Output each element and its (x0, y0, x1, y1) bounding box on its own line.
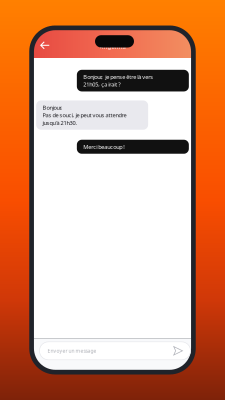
staticText: Bonjour, (43, 104, 63, 111)
staticText: Angelina (99, 43, 125, 51)
button[interactable]: Back (37, 39, 53, 52)
staticText: Merci beaucoup ! (83, 143, 125, 150)
staticText: 21h05, ça irait ? (83, 81, 120, 88)
staticText: Pas de souci, je peut vous attendre (43, 111, 127, 119)
staticText: Bonjour, je pense être là vers (83, 73, 153, 81)
staticText: Envoyer un message (47, 347, 96, 354)
staticText: jusqu'à 21h30. (43, 119, 78, 126)
button[interactable]: Send message (172, 344, 185, 357)
